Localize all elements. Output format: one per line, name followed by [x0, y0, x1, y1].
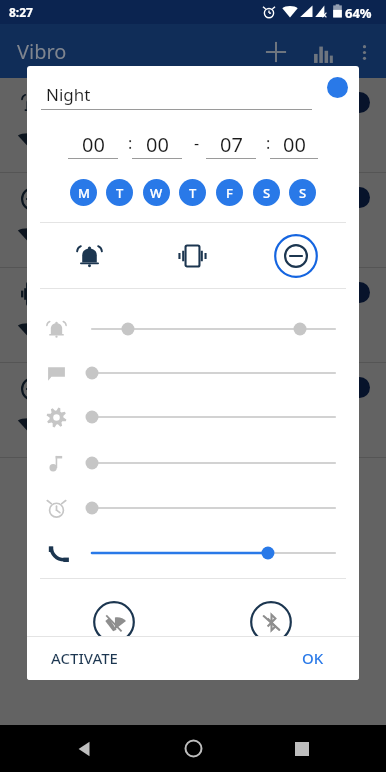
staticText: 8:27	[9, 4, 33, 20]
staticText: M	[78, 184, 90, 202]
staticText: Work	[90, 189, 132, 212]
button[interactable]: 00	[68, 128, 118, 159]
button[interactable]: Volume	[85, 358, 343, 388]
staticText: OK	[302, 648, 324, 668]
button[interactable]: Volume	[85, 314, 343, 344]
button[interactable]: Home	[169, 725, 217, 772]
staticText: S	[263, 184, 271, 202]
staticText: :	[266, 132, 271, 154]
button[interactable]: M	[70, 179, 97, 206]
button[interactable]: S	[253, 179, 280, 206]
button[interactable]: OK	[294, 640, 332, 676]
staticText: -	[194, 132, 200, 154]
button[interactable]: Wi-Fi	[93, 601, 135, 643]
button[interactable]: Work	[0, 173, 386, 268]
staticText: T	[189, 184, 197, 202]
staticText: W	[150, 184, 163, 202]
staticText: Home	[90, 284, 139, 307]
button[interactable]: Bluetooth	[250, 601, 292, 643]
button[interactable]: Meeting	[0, 363, 386, 458]
button[interactable]: S	[289, 179, 316, 206]
button[interactable]: Volume	[85, 538, 343, 568]
button[interactable]: Night	[0, 78, 386, 173]
button[interactable]: Back	[61, 725, 109, 772]
staticText: 00:00 - 07:00	[90, 122, 168, 140]
staticText: 00	[146, 131, 169, 158]
button[interactable]: Statistics	[300, 24, 346, 78]
button[interactable]: W	[143, 179, 170, 206]
button[interactable]: 00	[132, 128, 182, 159]
staticText: T	[116, 184, 124, 202]
button[interactable]: T	[179, 179, 206, 206]
staticText: ACTIVATE	[51, 648, 118, 668]
staticText: 00:00 - 07:00	[90, 407, 168, 425]
staticText: :	[128, 132, 133, 154]
button[interactable]: Pick colour	[327, 77, 348, 98]
button[interactable]: 00	[270, 128, 318, 159]
staticText: 00	[283, 131, 306, 158]
button[interactable]: More options	[345, 24, 383, 78]
staticText: 00:00 - 07:00	[90, 217, 168, 235]
button[interactable]: Ring	[67, 234, 111, 278]
button[interactable]: F	[216, 179, 243, 206]
staticText: 64%	[345, 4, 372, 22]
button[interactable]: ACTIVATE	[43, 640, 126, 676]
button[interactable]: Recents	[278, 725, 326, 772]
staticText: F	[226, 184, 233, 202]
button[interactable]: Volume	[85, 493, 343, 523]
staticText: 07	[220, 131, 243, 158]
button[interactable]: Add profile	[252, 24, 299, 78]
staticText: 00	[82, 131, 105, 158]
button[interactable]: Vibrate	[170, 234, 214, 278]
button[interactable]: Volume	[85, 402, 343, 432]
staticText: Night	[90, 94, 135, 117]
staticText: Night	[46, 83, 91, 106]
button[interactable]: Volume	[85, 448, 343, 478]
staticText: 00:00 - 07:00	[90, 312, 168, 330]
button[interactable]: 07	[206, 128, 256, 159]
button[interactable]: Home	[0, 268, 386, 363]
button[interactable]: Do not disturb	[274, 234, 318, 278]
button[interactable]: T	[106, 179, 133, 206]
staticText: Vibro	[17, 38, 67, 65]
staticText: S	[299, 184, 307, 202]
